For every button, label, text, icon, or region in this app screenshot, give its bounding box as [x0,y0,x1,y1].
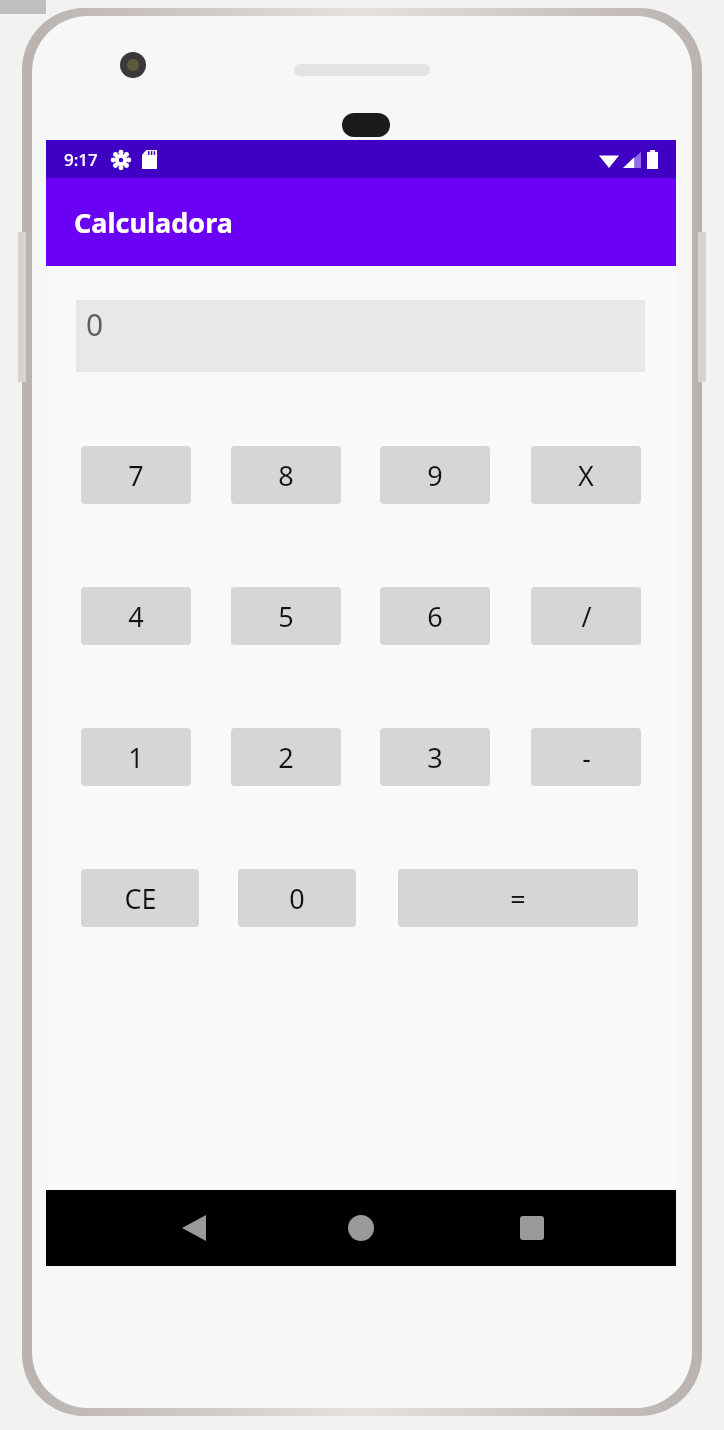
button[interactable]: 5 [231,587,341,645]
button[interactable]: X [531,446,641,504]
staticText: 2 [278,739,294,776]
staticText: 9 [427,457,443,494]
button[interactable]: Back [158,1192,230,1264]
staticText: 4 [128,598,144,635]
button[interactable]: 0 [238,869,356,927]
button[interactable]: 9 [380,446,490,504]
button[interactable]: 3 [380,728,490,786]
staticText: 1 [128,739,144,776]
button[interactable]: CE [81,869,199,927]
staticText: X [578,457,594,494]
staticText: 5 [278,598,294,635]
button[interactable]: 2 [231,728,341,786]
staticText: = [510,880,526,917]
button[interactable]: 6 [380,587,490,645]
staticText: 7 [128,457,144,494]
staticText: CE [124,880,157,917]
staticText: 0 [86,304,104,345]
staticText: 3 [427,739,443,776]
button[interactable]: = [398,869,638,927]
button[interactable]: Recent apps [496,1192,568,1264]
button[interactable]: - [531,728,641,786]
staticText: 9:17 [64,148,98,171]
staticText: / [581,598,592,635]
staticText: - [582,739,591,776]
button[interactable]: 8 [231,446,341,504]
button[interactable]: 4 [81,587,191,645]
button[interactable]: 7 [81,446,191,504]
button[interactable]: 1 [81,728,191,786]
button[interactable]: 0 [76,300,645,372]
staticText: 8 [278,457,294,494]
staticText: Calculadora [74,204,233,241]
button[interactable]: / [531,587,641,645]
staticText: 0 [289,880,305,917]
button[interactable]: Home [325,1192,397,1264]
staticText: 6 [427,598,443,635]
